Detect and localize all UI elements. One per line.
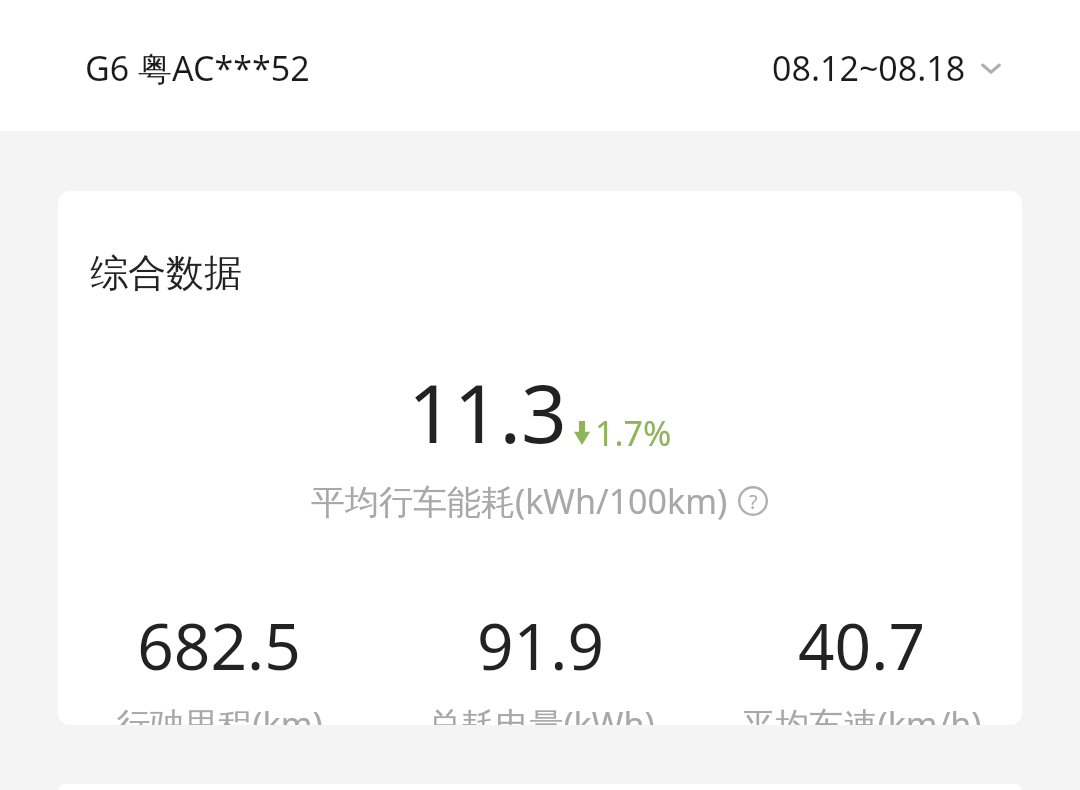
- staticText: 综合数据: [90, 249, 242, 297]
- button[interactable]: Help: [736, 484, 770, 518]
- button[interactable]: 综合数据: [58, 191, 1022, 725]
- staticText: 08.12~08.18: [772, 45, 966, 91]
- button[interactable]: 40.7: [701, 602, 1022, 725]
- other: Decreased: [573, 418, 591, 448]
- staticText: ?: [749, 488, 758, 515]
- staticText: 总耗电量(kWh): [427, 701, 655, 725]
- button[interactable]: 682.5: [58, 602, 380, 725]
- staticText: 682.5: [137, 602, 301, 689]
- button[interactable]: 91.9: [380, 602, 701, 725]
- other: Change date range: [976, 53, 1006, 83]
- staticText: 11.3: [408, 357, 567, 466]
- staticText: 行驶里程(km): [116, 701, 323, 725]
- button[interactable]: G6 粤AC***52: [85, 45, 310, 91]
- button[interactable]: 08.12~08.18: [768, 39, 1010, 97]
- staticText: 平均行车能耗(kWh/100km): [311, 478, 728, 524]
- staticText: 平均车速(km/h): [741, 701, 982, 725]
- staticText: 91.9: [477, 602, 604, 689]
- staticText: 1.7%: [595, 410, 672, 456]
- staticText: 40.7: [798, 602, 925, 689]
